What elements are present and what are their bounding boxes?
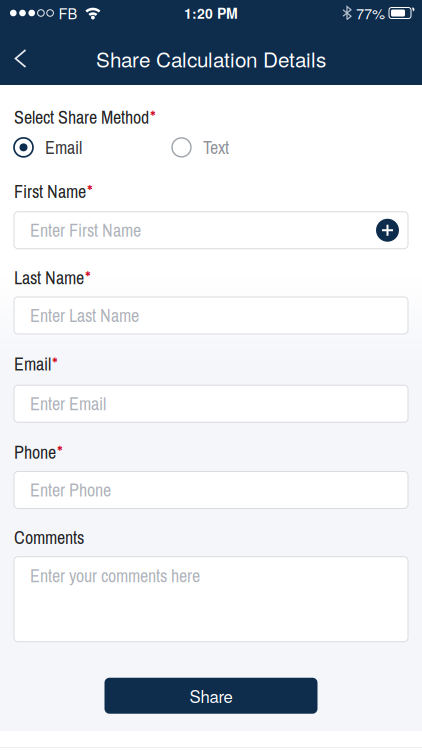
staticText: Comments [14,525,84,550]
button[interactable]: Enter your comments here [14,557,408,642]
staticText: Text [203,135,229,159]
staticText: 1:20 PM [184,3,238,23]
button[interactable]: Enter Last Name [14,297,408,334]
staticText: FB [58,2,77,23]
staticText: First Name [14,179,86,204]
staticText: Phone [14,440,56,464]
staticText: 77% [356,2,385,23]
staticText: * [52,352,58,376]
staticText: Enter your comments here [30,564,200,588]
staticText: Enter Last Name [30,303,139,328]
button[interactable]: Enter Phone [14,471,408,508]
staticText: Email [14,352,51,376]
button[interactable]: Add contact [376,219,408,242]
staticText: * [57,440,63,464]
staticText: Enter Phone [30,478,111,502]
button[interactable]: Enter Email [14,385,408,422]
staticText: Email [45,135,82,159]
staticText: Share [189,684,232,708]
staticText: Share Calculation Details [96,44,326,73]
button[interactable]: Share by Text [172,135,229,159]
staticText: * [150,105,156,129]
staticText: * [87,179,93,204]
staticText: Last Name [14,266,84,290]
button[interactable]: Enter First Name [14,212,408,249]
button[interactable]: Share [104,678,317,714]
staticText: Enter Email [30,392,106,416]
button[interactable]: Back [0,35,27,82]
staticText: Select Share Method [14,105,149,129]
staticText: * [85,266,91,290]
button[interactable]: Share by Email [14,135,82,159]
staticText: Enter First Name [30,218,141,242]
